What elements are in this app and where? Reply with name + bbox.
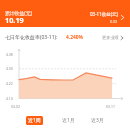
staticText: 更多业绩 <box>102 35 119 40</box>
staticText: 近3月 <box>91 117 104 124</box>
staticText: 4.30 <box>6 66 13 71</box>
staticText: 累计收益(元) <box>5 10 32 17</box>
staticText: 4.14 <box>6 96 13 101</box>
staticText: 近1周 <box>28 117 41 124</box>
staticText: 近1月 <box>62 117 75 124</box>
staticText: 4.38 <box>6 52 13 57</box>
button[interactable]: 03-11收益详情 <box>90 11 125 24</box>
button[interactable]: 近3月 <box>89 116 106 125</box>
staticText: 4.22 <box>6 81 13 86</box>
button[interactable]: 近1周 <box>26 116 43 125</box>
staticText: 0.02 <box>110 19 118 24</box>
button[interactable]: 更多业绩 <box>102 33 124 42</box>
staticText: 4.240% <box>66 34 83 41</box>
staticText: 03-11收益(元) <box>90 11 118 17</box>
button[interactable]: 近1月 <box>60 116 77 125</box>
staticText: 03-02 <box>11 104 20 109</box>
staticText: 七日年化收益率(03-11): <box>5 34 58 41</box>
staticText: 03-11 <box>106 104 115 109</box>
staticText: 10.19 <box>5 15 24 25</box>
